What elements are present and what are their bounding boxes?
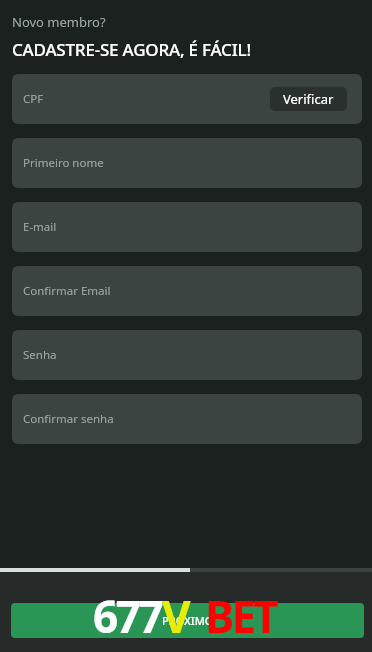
- button[interactable]: PRÓXIMO: [11, 603, 364, 638]
- button[interactable]: CPF: [12, 74, 362, 124]
- button[interactable]: Primeiro nome: [12, 138, 362, 188]
- button[interactable]: Senha: [12, 330, 362, 380]
- button[interactable]: Confirmar senha: [12, 394, 362, 444]
- other: 677VBET: [93, 586, 276, 646]
- staticText: Primeiro nome: [23, 155, 362, 171]
- staticText: CADASTRE-SE AGORA, É FÁCIL!: [12, 38, 251, 61]
- button[interactable]: E-mail: [12, 202, 362, 252]
- staticText: Senha: [23, 347, 362, 363]
- staticText: BET: [205, 586, 276, 646]
- staticText: PRÓXIMO: [162, 613, 214, 628]
- button[interactable]: Verificar: [270, 87, 347, 111]
- staticText: 677: [93, 586, 162, 646]
- staticText: Verificar: [283, 90, 334, 108]
- staticText: CPF: [23, 91, 270, 107]
- staticText: Confirmar Email: [23, 283, 362, 299]
- staticText: V: [162, 586, 189, 646]
- button[interactable]: Confirmar Email: [12, 266, 362, 316]
- staticText: E-mail: [23, 219, 362, 235]
- staticText: Novo membro?: [12, 13, 106, 31]
- staticText: Confirmar senha: [23, 411, 362, 427]
